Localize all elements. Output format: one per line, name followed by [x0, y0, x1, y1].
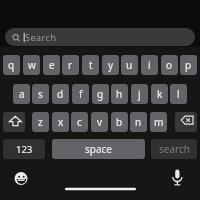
- staticText: a: [19, 87, 25, 101]
- staticText: w: [28, 58, 36, 72]
- button[interactable]: Search: [5, 28, 195, 46]
- button[interactable]: e: [43, 55, 60, 75]
- button[interactable]: d: [52, 84, 69, 104]
- button[interactable]: n: [130, 112, 147, 132]
- staticText: s: [38, 87, 43, 101]
- button[interactable]: 123: [3, 139, 45, 159]
- button[interactable]: t: [82, 55, 99, 75]
- button[interactable]: u: [121, 55, 138, 75]
- staticText: i: [148, 58, 151, 72]
- staticText: y: [108, 58, 114, 72]
- button[interactable]: b: [111, 112, 128, 132]
- staticText: m: [154, 115, 164, 129]
- staticText: j: [138, 87, 141, 101]
- button[interactable]: p: [180, 55, 197, 75]
- staticText: k: [157, 87, 163, 101]
- staticText: q: [8, 58, 15, 72]
- button[interactable]: i: [141, 55, 158, 75]
- button[interactable]: search: [151, 139, 197, 159]
- staticText: r: [68, 58, 73, 72]
- button[interactable]: q: [3, 55, 20, 75]
- button[interactable]: [170, 169, 185, 186]
- button[interactable]: [3, 112, 25, 132]
- staticText: z: [38, 115, 43, 129]
- staticText: b: [116, 115, 123, 129]
- staticText: p: [185, 58, 192, 72]
- button[interactable]: j: [131, 84, 148, 104]
- staticText: c: [77, 115, 82, 129]
- button[interactable]: s: [32, 84, 49, 104]
- staticText: o: [166, 58, 173, 72]
- staticText: e: [49, 58, 55, 72]
- button[interactable]: y: [102, 55, 119, 75]
- button[interactable]: l: [170, 84, 187, 104]
- staticText: 123: [16, 143, 33, 156]
- staticText: h: [116, 87, 123, 101]
- button[interactable]: r: [62, 55, 79, 75]
- staticText: l: [177, 87, 180, 101]
- button[interactable]: o: [161, 55, 178, 75]
- button[interactable]: v: [91, 112, 108, 132]
- staticText: f: [79, 87, 83, 101]
- button[interactable]: [13, 171, 29, 187]
- staticText: Search: [25, 31, 57, 43]
- button[interactable]: h: [111, 84, 128, 104]
- staticText: d: [57, 87, 64, 101]
- staticText: space: [85, 142, 112, 156]
- button[interactable]: f: [72, 84, 89, 104]
- button[interactable]: space: [52, 139, 145, 159]
- button[interactable]: x: [52, 112, 69, 132]
- button[interactable]: w: [23, 55, 40, 75]
- staticText: x: [58, 115, 64, 129]
- button[interactable]: [175, 112, 197, 132]
- button[interactable]: z: [32, 112, 49, 132]
- staticText: g: [97, 87, 104, 101]
- button[interactable]: m: [150, 112, 167, 132]
- staticText: v: [97, 115, 103, 129]
- button[interactable]: a: [13, 84, 30, 104]
- staticText: search: [159, 142, 190, 156]
- button[interactable]: k: [151, 84, 168, 104]
- button[interactable]: c: [71, 112, 88, 132]
- staticText: t: [89, 58, 93, 72]
- staticText: u: [126, 58, 133, 72]
- staticText: n: [135, 115, 142, 129]
- button[interactable]: g: [92, 84, 109, 104]
